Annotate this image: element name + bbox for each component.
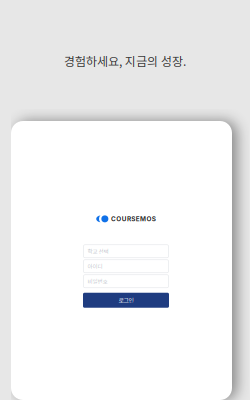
staticText: COURSEMOS xyxy=(111,215,156,223)
button[interactable]: 로그인 xyxy=(83,293,169,308)
staticText: 아이디 xyxy=(87,262,102,270)
staticText: 경험하세요, 지금의 성장. xyxy=(64,52,186,69)
staticText: 비밀번호 xyxy=(87,277,107,285)
staticText: 학교 선택 xyxy=(87,247,108,255)
staticText: 로그인 xyxy=(118,296,133,304)
